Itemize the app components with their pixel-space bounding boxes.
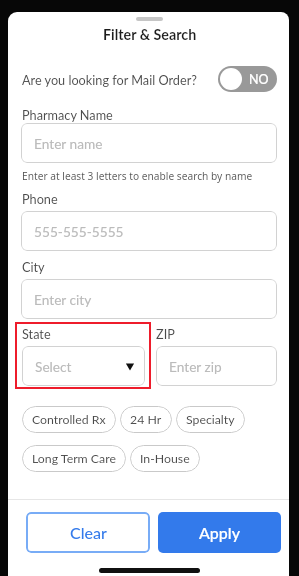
button[interactable]: Specialty xyxy=(176,406,245,433)
button[interactable]: 24 Hr xyxy=(120,406,172,433)
staticText: Enter city xyxy=(34,291,92,307)
staticText: Select xyxy=(35,358,72,374)
staticText: Enter zip xyxy=(169,358,222,374)
button[interactable]: 555-555-5555 xyxy=(21,211,277,251)
staticText: Enter name xyxy=(34,135,103,151)
button[interactable]: Clear xyxy=(26,512,150,553)
button[interactable]: Select xyxy=(22,346,145,386)
button[interactable]: Long Term Care xyxy=(22,445,126,472)
button[interactable]: Mail order toggle xyxy=(218,66,277,92)
staticText: Controlled Rx xyxy=(32,412,106,427)
staticText: Filter & Search xyxy=(103,26,197,43)
button[interactable]: Enter name xyxy=(21,123,277,163)
staticText: Pharmacy Name xyxy=(22,107,113,122)
staticText: NO xyxy=(249,72,269,87)
button[interactable]: Enter city xyxy=(21,279,277,319)
button[interactable]: Apply xyxy=(158,512,281,553)
staticText: State xyxy=(22,326,51,341)
button[interactable]: Enter zip xyxy=(156,346,277,386)
staticText: City xyxy=(22,259,45,274)
staticText: ZIP xyxy=(156,326,175,341)
button[interactable]: In-House xyxy=(130,445,200,472)
staticText: Phone xyxy=(22,191,58,206)
staticText: In-House xyxy=(140,451,190,466)
staticText: Are you looking for Mail Order? xyxy=(22,72,197,87)
staticText: Enter at least 3 letters to enable searc… xyxy=(22,169,253,183)
staticText: Clear xyxy=(70,523,107,542)
staticText: 24 Hr xyxy=(130,412,162,427)
button[interactable]: Controlled Rx xyxy=(22,406,116,433)
staticText: Apply xyxy=(199,523,240,542)
staticText: 555-555-5555 xyxy=(34,223,124,239)
staticText: Long Term Care xyxy=(32,451,116,466)
staticText: Specialty xyxy=(186,412,235,427)
